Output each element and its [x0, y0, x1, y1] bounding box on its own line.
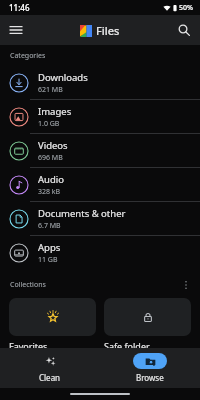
staticText: Categories	[10, 51, 46, 61]
button[interactable]: Audio	[0, 167, 200, 201]
staticText: 6.7 MB	[38, 221, 61, 231]
staticText: Images	[38, 105, 72, 118]
staticText: 1.0 GB	[38, 119, 60, 129]
staticText: 696 MB	[38, 153, 63, 163]
button[interactable]: Open navigation menu	[6, 20, 26, 40]
button[interactable]: Images	[0, 99, 200, 133]
button[interactable]: More options	[178, 277, 194, 293]
button[interactable]: Apps	[0, 235, 200, 269]
staticText: Downloads	[38, 71, 88, 84]
staticText: 11 GB	[38, 255, 58, 265]
button[interactable]: Clean	[0, 348, 100, 388]
button[interactable]: Downloads	[0, 66, 200, 99]
staticText: 50%	[179, 3, 193, 13]
button[interactable]: Search	[174, 20, 194, 40]
button[interactable]: Browse	[100, 348, 200, 388]
staticText: Collections	[10, 280, 46, 290]
staticText: Browse	[136, 372, 164, 383]
button[interactable]: Documents & other	[0, 201, 200, 235]
staticText: Favorites	[9, 340, 48, 348]
staticText: Safe folder	[104, 340, 150, 348]
staticText: Files	[96, 23, 120, 38]
staticText: Apps	[38, 241, 61, 254]
staticText: Audio	[38, 173, 64, 186]
button[interactable]: Safe folder	[104, 298, 191, 348]
button[interactable]: Favorites	[9, 298, 96, 348]
staticText: 621 MB	[38, 85, 63, 95]
staticText: Documents & other	[38, 207, 126, 220]
staticText: Clean	[39, 372, 61, 383]
staticText: Videos	[38, 139, 68, 152]
button[interactable]: Videos	[0, 133, 200, 167]
staticText: 11:46	[9, 2, 30, 13]
staticText: 328 kB	[38, 187, 61, 197]
